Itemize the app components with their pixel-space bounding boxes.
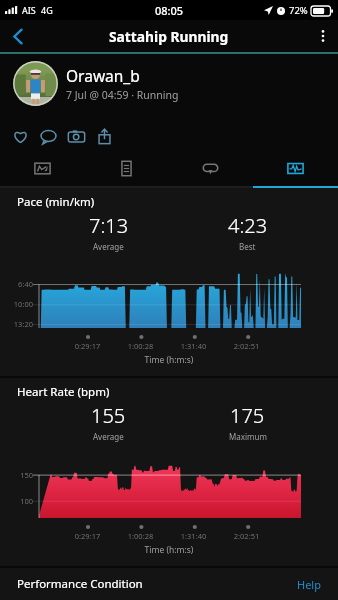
button[interactable]: Charts [253, 151, 338, 186]
staticText: 2:02:51 [220, 531, 273, 541]
staticText: 72% [289, 4, 308, 17]
button[interactable]: Details [84, 151, 168, 186]
staticText: 2:02:51 [220, 341, 273, 351]
staticText: Sattahip Running [109, 27, 229, 46]
staticText: 08:05 [155, 3, 184, 18]
staticText: 1:31:40 [167, 531, 220, 541]
staticText: 150 [5, 470, 33, 480]
button[interactable]: Add photo [67, 127, 85, 145]
staticText: 7:13 [89, 212, 129, 239]
staticText: Heart Rate (bpm) [17, 384, 110, 400]
staticText: 0:29:17 [61, 531, 114, 541]
staticText: 10:00 [5, 299, 33, 309]
staticText: Average [93, 431, 124, 442]
staticText: 6:40 [5, 279, 33, 289]
staticText: Time (h:m:s) [0, 544, 338, 556]
staticText: Average [93, 241, 124, 252]
staticText: Time (h:m:s) [0, 354, 338, 366]
button[interactable]: More options [308, 20, 338, 52]
staticText: Help [297, 577, 321, 592]
staticText: 1:31:40 [167, 341, 220, 351]
button[interactable]: Like [11, 127, 29, 145]
staticText: 4G [41, 4, 53, 16]
button[interactable]: Map [0, 151, 84, 186]
button[interactable]: Comment [39, 127, 57, 145]
staticText: 1:00:28 [114, 341, 167, 351]
button[interactable]: Performance Condition [0, 568, 338, 600]
staticText: 0:29:17 [61, 341, 114, 351]
staticText: 100 [5, 496, 33, 506]
staticText: 1:00:28 [114, 531, 167, 541]
button[interactable]: Laps [168, 151, 253, 186]
staticText: 4:23 [228, 212, 268, 239]
staticText: Best [239, 241, 256, 252]
staticText: 7 Jul @ 04:59 · Running [66, 88, 179, 102]
button[interactable]: Orawan_b [0, 54, 338, 112]
button[interactable]: Back [0, 20, 36, 52]
staticText: Maximum [229, 431, 267, 442]
staticText: 175 [230, 402, 265, 429]
staticText: AIS [22, 4, 36, 16]
staticText: Pace (min/km) [17, 194, 95, 210]
button[interactable]: Share [95, 127, 113, 145]
staticText: Orawan_b [66, 65, 140, 86]
staticText: Performance Condition [17, 576, 143, 592]
staticText: 155 [91, 402, 126, 429]
staticText: 13:20 [5, 319, 33, 329]
